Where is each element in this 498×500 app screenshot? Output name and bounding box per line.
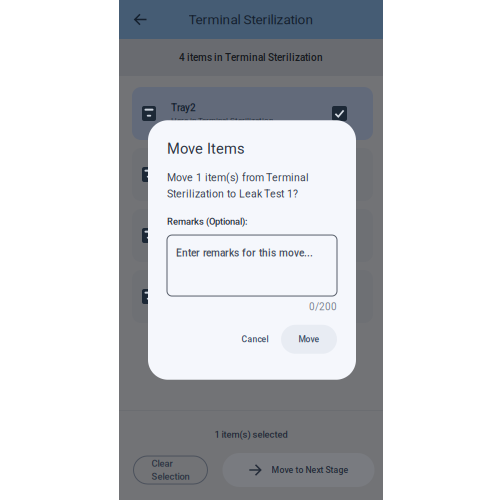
staticText: Here in Terminal Sterilization bbox=[171, 116, 273, 125]
button[interactable]: Move bbox=[281, 325, 337, 354]
staticText: Move Items bbox=[167, 140, 245, 157]
staticText: Clear bbox=[151, 458, 172, 469]
button[interactable]: Tray5 bbox=[132, 270, 373, 323]
staticText: Terminal Sterilization bbox=[188, 11, 313, 27]
staticText: 1 item(s) selected bbox=[214, 429, 287, 440]
staticText: Here in Terminal Sterilization bbox=[171, 177, 273, 186]
button[interactable]: Tray4 bbox=[132, 209, 373, 262]
staticText: Move 1 item(s) from Terminal bbox=[167, 171, 309, 184]
staticText: 4 items in Terminal Sterilization bbox=[179, 52, 323, 63]
button[interactable]: Tray2 bbox=[132, 87, 373, 140]
staticText: Move bbox=[298, 334, 319, 344]
button[interactable]: Clear bbox=[133, 456, 207, 484]
button[interactable]: Tray3 bbox=[132, 148, 373, 201]
staticText: Tray4 bbox=[171, 224, 196, 236]
staticText: Remarks (Optional): bbox=[167, 216, 247, 227]
staticText: Cancel bbox=[241, 334, 268, 344]
staticText: Tray2 bbox=[171, 102, 196, 114]
staticText: Sterilization to Leak Test 1? bbox=[167, 188, 298, 200]
button[interactable]: Cancel bbox=[232, 326, 278, 352]
staticText: Move to Next Stage bbox=[271, 465, 348, 475]
button[interactable]: Back bbox=[127, 0, 154, 39]
staticText: Tray5 bbox=[171, 285, 196, 297]
staticText: 0/200 bbox=[309, 301, 337, 313]
staticText: Selection bbox=[151, 471, 189, 482]
staticText: Tray3 bbox=[171, 163, 196, 175]
button[interactable]: Move to Next Stage bbox=[222, 453, 374, 487]
staticText: Enter remarks for this move... bbox=[176, 247, 313, 259]
